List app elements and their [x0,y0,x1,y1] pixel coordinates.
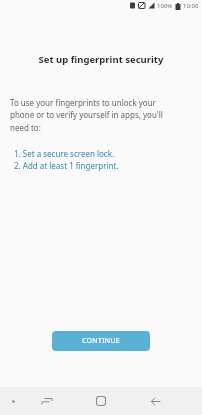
staticText: 100% [157,2,173,10]
button[interactable] [33,387,61,415]
button[interactable] [4,392,22,410]
button[interactable] [141,387,169,415]
staticText: CONTINUE [82,336,121,346]
button[interactable]: CONTINUE [52,331,150,351]
staticText: 10:00 [183,2,199,10]
staticText: 1. Set a secure screen lock. 2. Add at l… [14,148,119,172]
button[interactable] [87,387,115,415]
staticText: Set up fingerprint security [0,53,202,66]
staticText: To use your fingerprints to unlock your … [10,97,163,134]
